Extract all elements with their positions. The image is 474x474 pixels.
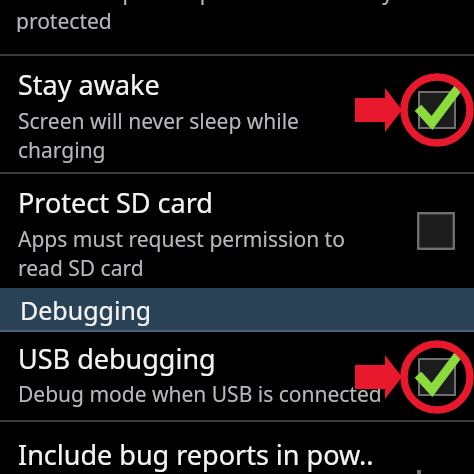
button[interactable]: Enabled checkbox highlighted <box>356 70 474 150</box>
button[interactable]: Include bug reports in pow.. <box>0 422 474 474</box>
staticText: protected <box>16 7 112 32</box>
staticText: USB debugging <box>18 340 216 377</box>
staticText: Debugging <box>20 293 152 327</box>
button[interactable]: Toggle checkbox <box>417 470 455 474</box>
staticText: Debug mode when USB is connected <box>18 380 382 409</box>
button[interactable]: Debugging <box>0 288 474 332</box>
button[interactable]: Protect SD card <box>0 174 474 288</box>
staticText: Stay awake <box>18 66 160 103</box>
staticText: Full desktop backups are not currently <box>16 0 393 7</box>
staticText: Include bug reports in pow.. <box>18 436 374 473</box>
staticText: Screen will never sleep while <box>18 107 299 136</box>
staticText: charging <box>18 136 106 165</box>
button[interactable]: Toggle checkbox <box>417 212 455 250</box>
button[interactable]: Enabled checkbox highlighted <box>356 337 474 417</box>
button[interactable]: Stay awake <box>0 56 474 172</box>
button[interactable]: USB debugging <box>0 332 474 420</box>
staticText: Protect SD card <box>18 184 213 221</box>
staticText: Apps must request permission to <box>18 225 345 254</box>
staticText: read SD card <box>18 254 144 283</box>
